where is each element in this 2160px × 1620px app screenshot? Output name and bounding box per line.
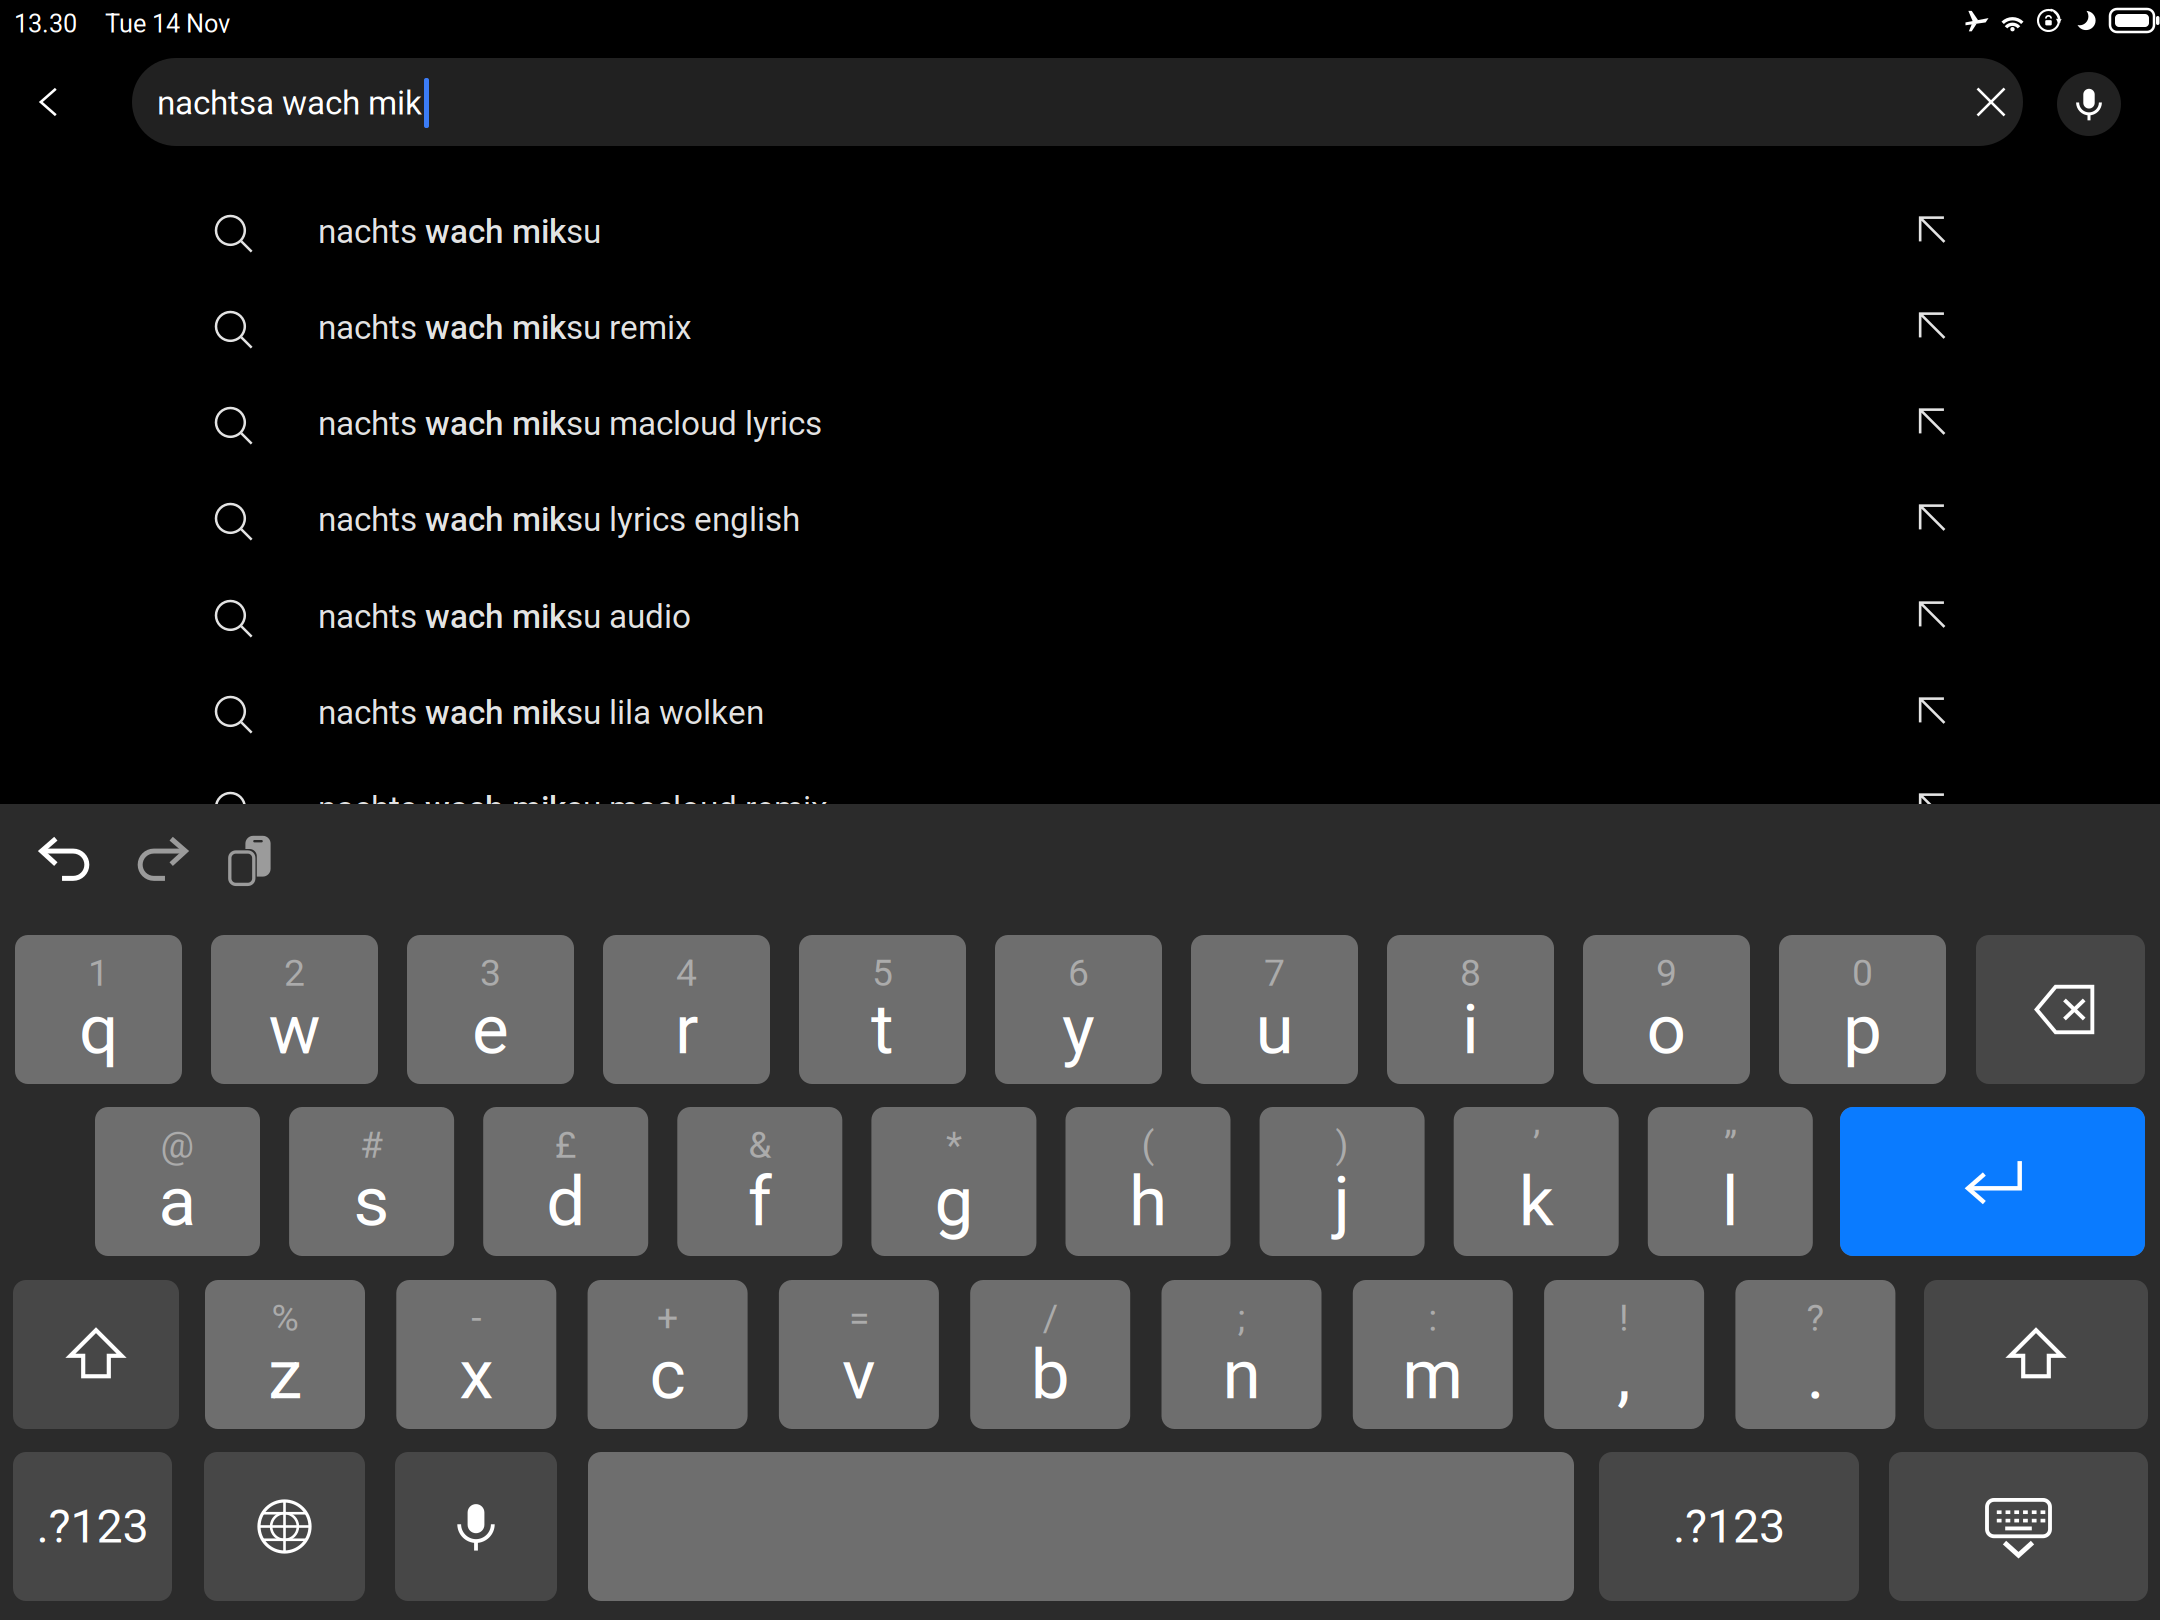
button[interactable]: Shift [1924,1280,2148,1429]
staticText: * [946,1123,962,1167]
staticText: c [650,1334,686,1415]
staticText: m [1402,1334,1463,1415]
button[interactable]: + [588,1280,748,1429]
button[interactable]: 9 [1583,935,1750,1084]
staticText: j [1334,1161,1351,1242]
button[interactable]: 0 [1779,935,1946,1084]
staticText: 4 [676,951,697,995]
staticText: £ [555,1123,577,1167]
button[interactable]: Next keyboard [204,1452,365,1601]
button[interactable]: Redo [105,806,215,916]
button[interactable]: Hide keyboard [1889,1452,2148,1601]
button[interactable]: @ [95,1107,260,1256]
button[interactable]: - [396,1280,556,1429]
staticText: + [657,1296,678,1340]
staticText: wach mik [425,308,566,347]
button[interactable]: Shift [13,1280,179,1429]
staticText: ( [1141,1123,1154,1167]
button[interactable]: & [677,1107,842,1256]
staticText: nachts [318,212,425,251]
button[interactable]: 7 [1191,935,1358,1084]
staticText: : [1428,1296,1437,1340]
staticText: wach mik [425,789,566,828]
button[interactable]: ’ [1454,1107,1619,1256]
button[interactable]: = [779,1280,939,1429]
button[interactable]: nachts [0,472,2160,568]
button[interactable]: % [205,1280,365,1429]
button[interactable]: Clear text [1949,60,2033,144]
button[interactable]: ) [1260,1107,1425,1256]
button[interactable]: 6 [995,935,1162,1084]
button[interactable]: Undo [12,806,122,916]
button[interactable]: 5 [799,935,966,1084]
button[interactable]: ” [1648,1107,1813,1256]
button[interactable]: ; [1161,1280,1321,1429]
staticText: 13.30 [14,9,77,39]
button[interactable]: £ [483,1107,648,1256]
staticText: z [268,1334,302,1415]
staticText: u [1255,989,1293,1070]
staticText: # [360,1123,383,1167]
staticText: r [675,989,698,1070]
button[interactable]: * [871,1107,1036,1256]
staticText: su [566,212,601,251]
staticText: & [748,1123,771,1167]
button[interactable]: nachts [0,569,2160,665]
button[interactable]: .?123 [1599,1452,1859,1601]
button[interactable]: nachts [0,376,2160,472]
button[interactable]: nachts [0,184,2160,280]
button[interactable]: / [970,1280,1130,1429]
staticText: wach mik [425,693,566,732]
button[interactable]: nachts [0,280,2160,376]
button[interactable]: ! [1544,1280,1704,1429]
staticText: ) [1336,1123,1349,1167]
staticText: % [271,1296,298,1340]
staticText: Tue 14 Nov [105,9,230,39]
staticText: s [354,1161,390,1242]
staticText: 2 [284,951,305,995]
button[interactable]: .?123 [13,1452,172,1601]
staticText: wach mik [425,212,566,251]
staticText: nachts [318,500,425,539]
staticText: / [1043,1296,1058,1340]
button[interactable]: Voice search [2057,72,2121,136]
button[interactable]: Backspace [1976,935,2145,1084]
staticText: nachts [318,308,425,347]
button[interactable]: Paste [194,806,304,916]
staticText: - [471,1296,481,1340]
staticText: . [1806,1334,1824,1415]
staticText: nachts [318,789,425,828]
staticText: wach mik [425,404,566,443]
staticText: nachts [318,597,425,636]
button[interactable]: : [1353,1280,1513,1429]
staticText: su macloud remix [566,789,828,828]
staticText: 7 [1264,951,1285,995]
staticText: g [934,1161,973,1242]
button[interactable]: 4 [603,935,770,1084]
button[interactable]: ? [1735,1280,1895,1429]
button[interactable]: 3 [407,935,574,1084]
staticText: ’ [1533,1123,1540,1167]
button[interactable]: # [289,1107,454,1256]
button[interactable]: 1 [15,935,182,1084]
staticText: a [158,1161,196,1242]
staticText: y [1062,989,1095,1070]
button[interactable]: nachts [0,761,2160,857]
button[interactable]: 8 [1387,935,1554,1084]
staticText: nachts [318,404,425,443]
staticText: w [268,989,320,1070]
button[interactable]: nachts [0,665,2160,761]
staticText: su remix [566,308,692,347]
staticText: = [849,1296,869,1340]
button[interactable]: 2 [211,935,378,1084]
staticText: nachts [318,693,425,732]
button[interactable]: Dictation [395,1452,557,1601]
button[interactable]: Return [1840,1107,2145,1256]
button[interactable]: ( [1065,1107,1230,1256]
button[interactable]: Back [10,58,86,146]
staticText: 8 [1460,951,1481,995]
staticText: 3 [480,951,501,995]
staticText: i [1462,989,1479,1070]
staticText: .?123 [1673,1499,1785,1554]
